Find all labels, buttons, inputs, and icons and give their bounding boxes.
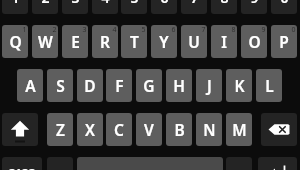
staticText: 0 (280, 0, 289, 7)
button[interactable]: E (62, 25, 88, 58)
button[interactable]: 9 (241, 0, 267, 14)
staticText: Q (9, 31, 22, 52)
staticText: D (84, 75, 96, 96)
button[interactable]: N (196, 113, 222, 146)
button[interactable]: V (136, 113, 162, 146)
staticText: 3 (71, 0, 80, 7)
button[interactable]: P (271, 25, 297, 58)
button[interactable]: A (17, 69, 43, 102)
staticText: H (173, 75, 185, 96)
button[interactable]: 0 (271, 0, 297, 14)
staticText: S (56, 75, 65, 96)
button[interactable]: X (77, 113, 103, 146)
button[interactable]: M (226, 113, 252, 146)
staticText: 1 (11, 0, 20, 7)
staticText: P (279, 31, 289, 52)
staticText: L (265, 75, 274, 96)
staticText: 5 (130, 0, 139, 7)
button[interactable]: I (211, 25, 237, 58)
button[interactable]: H (166, 69, 192, 102)
button[interactable]: Y (151, 25, 177, 58)
button[interactable]: W (32, 25, 58, 58)
button[interactable]: 5 (121, 0, 147, 14)
staticText: Y (159, 31, 169, 52)
staticText: 2 (41, 0, 50, 7)
button[interactable]: T (121, 25, 147, 58)
button[interactable]: Shift (2, 113, 38, 146)
button[interactable]: Z (47, 113, 73, 146)
staticText: Z (56, 119, 65, 140)
staticText: N (203, 119, 216, 140)
staticText: O (248, 31, 261, 52)
staticText: 7 (201, 25, 206, 35)
staticText: B (174, 119, 185, 140)
staticText: G (143, 75, 155, 96)
staticText: A (25, 75, 36, 96)
button[interactable]: K (226, 69, 252, 102)
staticText: 2 (52, 25, 57, 35)
button[interactable]: R (92, 25, 118, 58)
staticText: U (188, 31, 200, 52)
button[interactable]: L (256, 69, 282, 102)
button[interactable]: 6 (151, 0, 177, 14)
button[interactable]: U (181, 25, 207, 58)
staticText: M (232, 119, 247, 140)
staticText: 1 (22, 25, 27, 35)
staticText: T (130, 31, 139, 52)
staticText: 8 (231, 25, 236, 35)
staticText: K (234, 75, 245, 96)
button[interactable]: J (196, 69, 222, 102)
staticText: 6 (160, 0, 169, 7)
button[interactable]: Q (2, 25, 28, 58)
button[interactable]: ?123 (2, 157, 42, 170)
button[interactable]: G (136, 69, 162, 102)
staticText: 8 (220, 0, 229, 7)
button[interactable]: Backspace (261, 113, 297, 146)
staticText: C (114, 119, 124, 140)
staticText: V (144, 119, 154, 140)
button[interactable]: 3 (62, 0, 88, 14)
staticText: W (38, 31, 53, 52)
staticText: J (207, 75, 212, 96)
staticText: R (100, 31, 110, 52)
staticText: 7 (190, 0, 199, 7)
staticText: 4 (112, 25, 117, 35)
button[interactable]: 2 (32, 0, 58, 14)
button[interactable]: F (106, 69, 132, 102)
staticText: F (115, 75, 124, 96)
staticText: 5 (141, 25, 146, 35)
button[interactable]: C (106, 113, 132, 146)
staticText: X (85, 119, 95, 140)
staticText: 4 (101, 0, 110, 7)
button[interactable]: 8 (211, 0, 237, 14)
staticText: I (221, 31, 227, 52)
button[interactable]: Enter (258, 157, 297, 170)
staticText: 0 (291, 25, 296, 35)
staticText: ?123 (9, 165, 36, 170)
staticText: 9 (250, 0, 259, 7)
button[interactable]: D (77, 69, 103, 102)
staticText: 6 (171, 25, 176, 35)
button[interactable]: S (47, 69, 73, 102)
button[interactable]: O (241, 25, 267, 58)
staticText: E (71, 31, 80, 52)
staticText: 9 (261, 25, 266, 35)
button[interactable]: 7 (181, 0, 207, 14)
button[interactable]: 4 (92, 0, 118, 14)
button[interactable]: B (166, 113, 192, 146)
staticText: 3 (82, 25, 87, 35)
button[interactable]: 1 (2, 0, 28, 14)
